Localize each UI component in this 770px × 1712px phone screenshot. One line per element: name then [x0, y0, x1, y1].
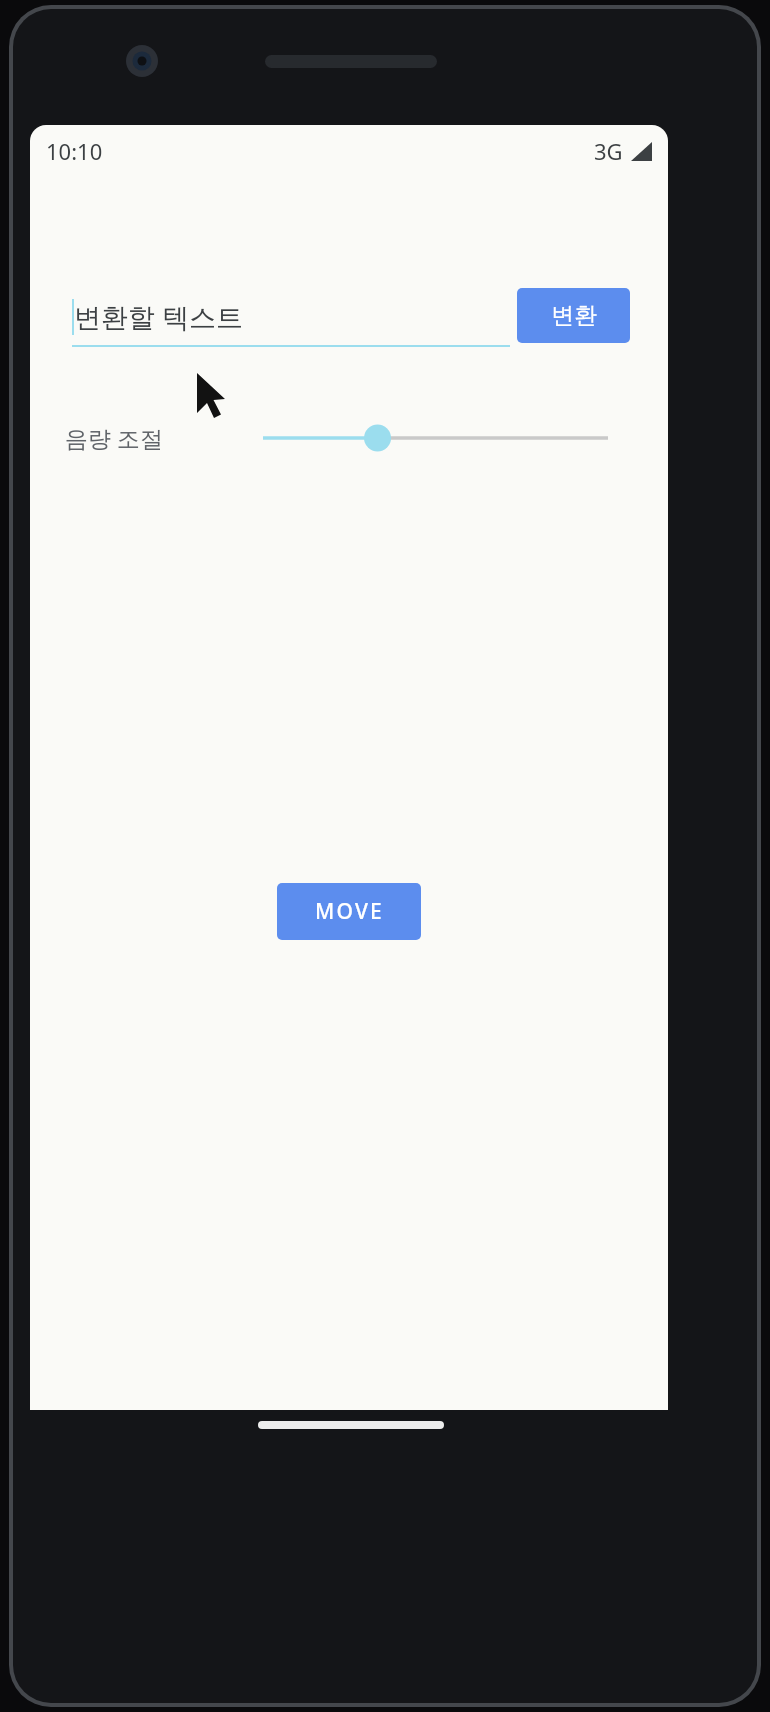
staticText: 변환 [551, 301, 597, 330]
staticText: MOVE [315, 897, 384, 926]
staticText: 3G [594, 136, 623, 166]
staticText: 10:10 [46, 136, 103, 166]
button[interactable]: 변환할 텍스트 [72, 285, 510, 347]
staticText: 음량 조절 [65, 422, 163, 453]
button[interactable]: 변환 [517, 288, 630, 343]
button[interactable]: MOVE [277, 883, 421, 940]
staticText: 변환할 텍스트 [74, 298, 244, 335]
button[interactable]: 음량 조절 slider [263, 420, 608, 456]
